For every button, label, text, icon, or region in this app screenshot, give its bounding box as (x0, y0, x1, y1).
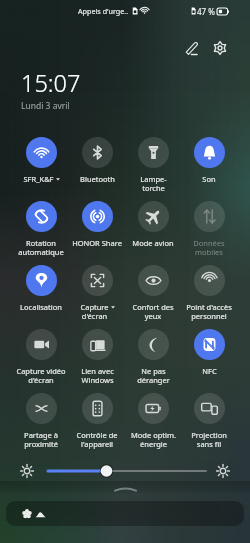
staticText: Projection sans fil (191, 430, 227, 450)
button[interactable]: Lampe- torche (125, 137, 181, 201)
button[interactable]: Mode avion (125, 201, 181, 265)
staticText: 15:07 (21, 67, 81, 99)
button[interactable]: Settings (207, 35, 233, 61)
staticText: Ne pas déranger (137, 366, 170, 386)
staticText: Capture vidéo d'écran (16, 366, 66, 386)
button[interactable]: Mode optim. énergie (125, 393, 181, 457)
staticText: Lampe- torche (140, 174, 167, 194)
staticText: 47 % (197, 6, 215, 17)
staticText: Mode optim. énergie (131, 430, 176, 450)
button[interactable]: Lien avec Windows (69, 329, 125, 393)
staticText: Appels d'urge.. (78, 6, 129, 16)
staticText: Son (202, 174, 216, 184)
staticText: Données mobiles (193, 238, 225, 258)
button[interactable]: Rotation automatique (13, 201, 69, 265)
button[interactable]: SFR_K&F (13, 137, 69, 201)
button[interactable]: Capture vidéo d'écran (13, 329, 69, 393)
button[interactable]: Ne pas déranger (125, 329, 181, 393)
button[interactable]: Projection sans fil (181, 393, 237, 457)
staticText: NFC (202, 366, 217, 376)
staticText: Point d'accès personnel (186, 302, 232, 322)
staticText: Partage à proximité (24, 430, 58, 450)
staticText: Localisation (20, 302, 62, 312)
staticText: Contrôle de l'appareil (76, 430, 118, 450)
button[interactable]: Edit quick settings (179, 35, 205, 61)
button[interactable]: Son (181, 137, 237, 201)
button[interactable]: Contrôle de l'appareil (69, 393, 125, 457)
button[interactable] (6, 501, 244, 526)
button[interactable]: Bluetooth (69, 137, 125, 201)
button[interactable]: Données mobiles (181, 201, 237, 265)
button[interactable]: HONOR Share (69, 201, 125, 265)
staticText: Rotation automatique (18, 238, 64, 258)
staticText: Mode avion (132, 238, 174, 248)
staticText: HONOR Share (72, 238, 122, 248)
button[interactable]: Localisation (13, 265, 69, 329)
button[interactable]: Capture d'écran (69, 265, 125, 329)
button[interactable]: Partage à proximité (13, 393, 69, 457)
button[interactable]: Confort des yeux (125, 265, 181, 329)
button[interactable]: NFC (181, 329, 237, 393)
staticText: Confort des yeux (132, 302, 174, 322)
staticText: Lien avec Windows (81, 366, 114, 386)
button[interactable]: Point d'accès personnel (181, 265, 237, 329)
staticText: Bluetooth (80, 174, 115, 184)
staticText: Lundi 3 avril (21, 100, 70, 112)
staticText: SFR_K&F (23, 174, 54, 184)
staticText: Capture d'écran (80, 302, 109, 322)
